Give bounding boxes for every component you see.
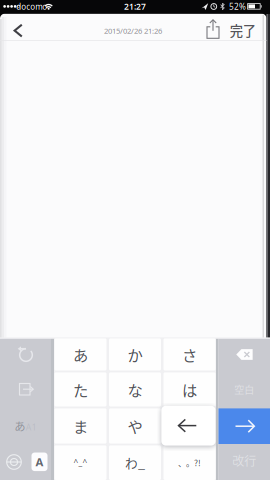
button[interactable]: Move cursor	[0, 372, 51, 406]
button[interactable]: わ_	[109, 445, 161, 480]
staticText: は	[182, 378, 197, 400]
staticText: A	[35, 454, 43, 469]
staticText: 、。?!	[178, 457, 201, 469]
staticText: な	[127, 378, 142, 400]
button[interactable]: 改行	[218, 443, 270, 478]
staticText: 21:27	[124, 1, 146, 12]
staticText: か	[127, 343, 142, 365]
button[interactable]: Input mode	[0, 408, 51, 443]
staticText: わ_	[125, 453, 145, 472]
button[interactable]: 、。?!	[163, 445, 215, 480]
staticText: 2015/02/26 21:26	[104, 26, 162, 36]
staticText: ま	[73, 415, 88, 437]
button[interactable]: か	[109, 338, 161, 370]
staticText: docomo	[16, 1, 47, 12]
button[interactable]: Back	[0, 13, 36, 40]
button[interactable]: あ	[54, 338, 106, 370]
button[interactable]: や	[109, 408, 161, 444]
staticText: 完了	[230, 20, 256, 40]
staticText: A1	[26, 421, 37, 433]
button[interactable]: は	[163, 372, 215, 406]
staticText: や	[127, 415, 142, 437]
button[interactable]: 完了	[226, 18, 260, 42]
staticText: 52%	[229, 1, 246, 12]
staticText: 空白	[234, 382, 254, 397]
button[interactable]: Delete	[218, 338, 270, 370]
button[interactable]: Cursor right	[218, 408, 270, 444]
staticText: た	[73, 378, 88, 400]
button[interactable]: IME	[31, 453, 47, 471]
staticText: あ	[14, 418, 25, 434]
button[interactable]: た	[54, 372, 106, 406]
staticText: さ	[182, 343, 197, 365]
staticText: 改行	[232, 452, 256, 469]
button[interactable]: さ	[163, 338, 215, 370]
staticText: あ	[73, 343, 88, 365]
button[interactable]: ま	[54, 408, 106, 444]
staticText: ^_^	[73, 456, 87, 467]
button[interactable]: Share	[201, 14, 223, 40]
button[interactable]: Next keyboard	[0, 445, 28, 479]
button[interactable]: Undo	[0, 338, 51, 370]
button[interactable]: ^_^	[54, 445, 106, 480]
button[interactable]: Cursor left	[161, 406, 216, 446]
button[interactable]: な	[109, 372, 161, 406]
